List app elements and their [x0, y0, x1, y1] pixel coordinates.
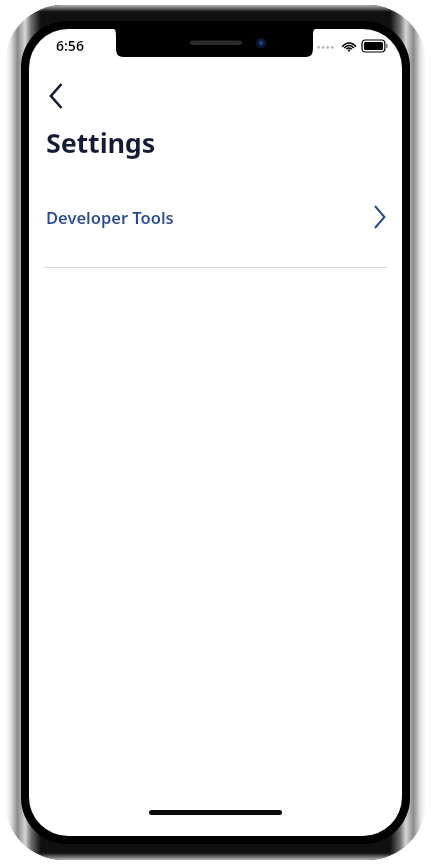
staticText: 6:56: [56, 36, 84, 55]
button[interactable]: Back: [35, 74, 79, 118]
button[interactable]: Developer Tools: [29, 193, 402, 241]
staticText: Developer Tools: [46, 206, 174, 228]
staticText: Settings: [46, 124, 156, 161]
